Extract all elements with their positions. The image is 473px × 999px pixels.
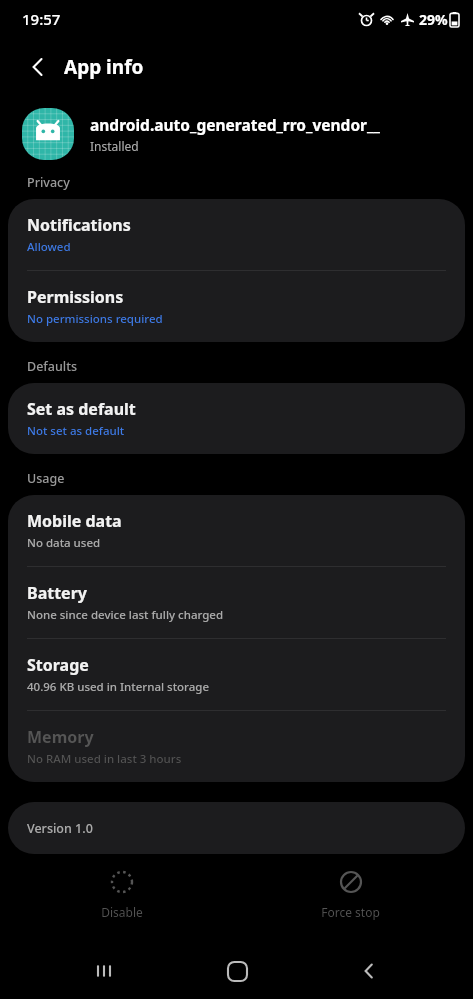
button[interactable]: Mobile data xyxy=(8,495,465,566)
button[interactable]: Recent apps xyxy=(76,943,132,999)
staticText: Disable xyxy=(101,904,143,920)
button[interactable]: Home xyxy=(209,943,265,999)
staticText: No data used xyxy=(27,535,101,551)
staticText: 29% xyxy=(419,10,448,29)
staticText: Usage xyxy=(27,470,65,487)
staticText: Privacy xyxy=(27,174,70,191)
staticText: Set as default xyxy=(27,398,136,420)
staticText: Force stop xyxy=(321,904,380,920)
staticText: Not set as default xyxy=(27,423,125,439)
staticText: 19:57 xyxy=(22,9,61,29)
staticText: Notifications xyxy=(27,214,131,236)
staticText: Permissions xyxy=(27,286,124,308)
staticText: Mobile data xyxy=(27,510,122,532)
staticText: android.auto_generated_rro_vendor__ xyxy=(90,114,380,135)
button[interactable]: Back xyxy=(341,943,397,999)
staticText: Defaults xyxy=(27,358,78,375)
button[interactable]: Storage xyxy=(8,639,465,710)
button[interactable]: Version 1.0 xyxy=(8,802,465,854)
staticText: Version 1.0 xyxy=(27,820,93,837)
staticText: None since device last fully charged xyxy=(27,607,224,623)
button[interactable]: Disable xyxy=(8,860,236,930)
staticText: Battery xyxy=(27,582,87,604)
button[interactable]: Back xyxy=(14,43,62,91)
staticText: 40.96 KB used in Internal storage xyxy=(27,679,210,695)
staticText: Memory xyxy=(27,726,94,748)
button[interactable]: Set as default xyxy=(8,383,465,454)
button[interactable]: Battery xyxy=(8,567,465,638)
staticText: No RAM used in last 3 hours xyxy=(27,751,182,767)
staticText: No permissions required xyxy=(27,311,163,327)
button[interactable]: Permissions xyxy=(8,271,465,342)
staticText: App info xyxy=(64,54,144,80)
button[interactable]: Force stop xyxy=(236,860,465,930)
staticText: Installed xyxy=(90,138,139,154)
button[interactable]: Notifications xyxy=(8,199,465,270)
staticText: Allowed xyxy=(27,239,71,255)
staticText: Storage xyxy=(27,654,89,676)
button[interactable]: Memory xyxy=(8,711,465,782)
